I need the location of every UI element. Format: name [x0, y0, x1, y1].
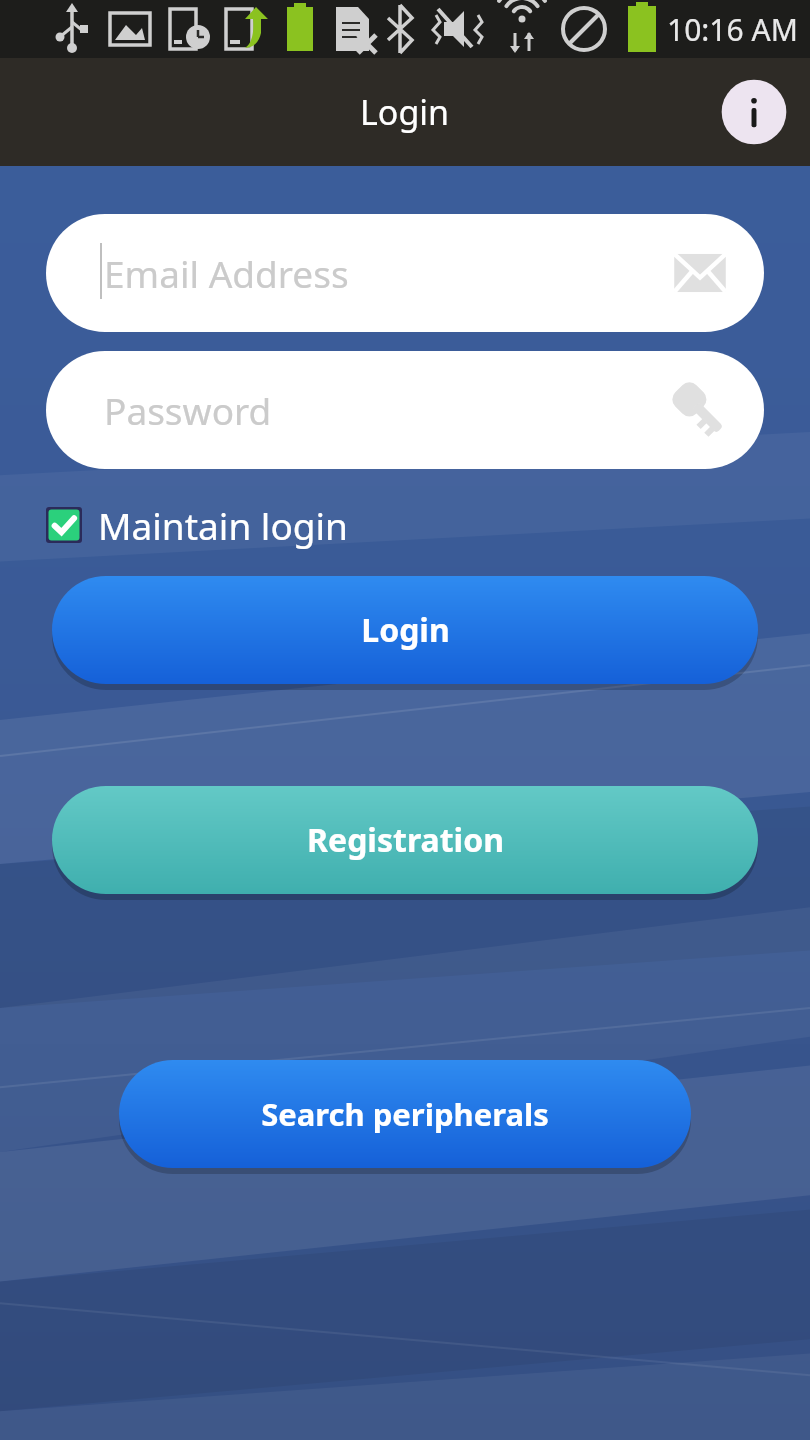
- staticText: Registration: [307, 818, 504, 862]
- button[interactable]: Registration: [52, 786, 758, 894]
- staticText: Login: [361, 608, 450, 652]
- staticText: Email Address: [104, 248, 349, 298]
- staticText: Search peripherals: [261, 1093, 549, 1135]
- staticText: Login: [360, 89, 450, 135]
- button[interactable]: Information: [720, 78, 788, 146]
- staticText: Password: [104, 385, 272, 435]
- button[interactable]: Email Address: [46, 214, 764, 332]
- button[interactable]: Login: [52, 576, 758, 684]
- button[interactable]: Search peripherals: [119, 1060, 691, 1168]
- button[interactable]: Maintain login: [46, 496, 348, 554]
- button[interactable]: Password: [46, 351, 764, 469]
- staticText: 10:16 AM: [667, 9, 798, 50]
- staticText: Maintain login: [98, 500, 348, 550]
